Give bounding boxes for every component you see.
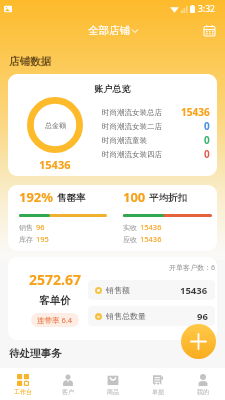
button[interactable]: 销售总数量 xyxy=(88,306,215,326)
staticText: 销售额 xyxy=(106,285,130,295)
staticText: 2572.67 xyxy=(29,270,81,289)
staticText: 客单价 xyxy=(39,294,71,307)
staticText: 总金额 xyxy=(45,121,66,130)
staticText: 15436 xyxy=(140,222,162,232)
button[interactable]: 新增 xyxy=(181,324,216,359)
button[interactable]: 工作台 xyxy=(0,368,45,400)
staticText: 平均折扣 xyxy=(149,192,187,204)
button[interactable]: 我的 xyxy=(180,368,225,400)
button[interactable]: 商品 xyxy=(90,368,135,400)
staticText: 15436 xyxy=(180,284,208,297)
staticText: 开单客户数：6 xyxy=(88,263,215,273)
button[interactable]: 时尚潮流女装二店 xyxy=(102,119,210,133)
button[interactable]: 100 xyxy=(112,185,217,251)
staticText: 时尚潮流女装四店 xyxy=(102,150,162,159)
staticText: 待处理事务 xyxy=(9,347,62,360)
button[interactable]: 日历 xyxy=(200,21,218,39)
staticText: 时尚潮流女装二店 xyxy=(102,122,162,131)
staticText: 时尚潮流女装总店 xyxy=(102,108,162,117)
button[interactable]: 时尚潮流女装四店 xyxy=(102,147,210,161)
staticText: 库存 xyxy=(19,235,33,244)
staticText: 96 xyxy=(36,222,45,232)
staticText: 账户总览 xyxy=(8,83,217,94)
staticText: 15436 xyxy=(140,234,162,244)
button[interactable]: 全部店铺 xyxy=(84,22,142,39)
staticText: 0 xyxy=(204,133,210,147)
staticText: 195 xyxy=(36,234,49,244)
button[interactable]: 销售额 xyxy=(88,280,215,300)
staticText: 连带率 6.4 xyxy=(37,315,73,325)
button[interactable]: 2572.67 xyxy=(22,257,88,340)
staticText: 3:32 xyxy=(198,3,215,15)
staticText: 实收 xyxy=(123,223,137,232)
staticText: 0 xyxy=(204,147,210,161)
button[interactable]: 时尚潮流童装 xyxy=(102,133,210,147)
button[interactable]: 账户总览 xyxy=(8,74,217,176)
staticText: 销售总数量 xyxy=(106,311,146,321)
staticText: 客户 xyxy=(62,388,74,396)
staticText: 100 xyxy=(123,188,146,206)
staticText: 销售 xyxy=(19,223,33,232)
staticText: 我的 xyxy=(197,388,209,396)
staticText: 0 xyxy=(204,119,210,133)
staticText: 15436 xyxy=(39,157,71,172)
staticText: 全部店铺 xyxy=(88,24,130,37)
staticText: 应收 xyxy=(123,235,137,244)
button[interactable]: 单据 xyxy=(135,368,180,400)
staticText: 15436 xyxy=(181,105,210,119)
staticText: 工作台 xyxy=(14,388,32,396)
staticText: 96 xyxy=(197,310,208,323)
staticText: 商品 xyxy=(107,388,119,396)
staticText: 售罄率 xyxy=(57,192,86,204)
staticText: 时尚潮流童装 xyxy=(102,136,147,145)
staticText: 192% xyxy=(19,188,54,206)
button[interactable]: 客户 xyxy=(45,368,90,400)
button[interactable]: 192% xyxy=(8,185,112,251)
button[interactable]: 时尚潮流女装总店 xyxy=(102,105,210,119)
staticText: 店铺数据 xyxy=(9,55,51,68)
staticText: 单据 xyxy=(152,388,164,396)
